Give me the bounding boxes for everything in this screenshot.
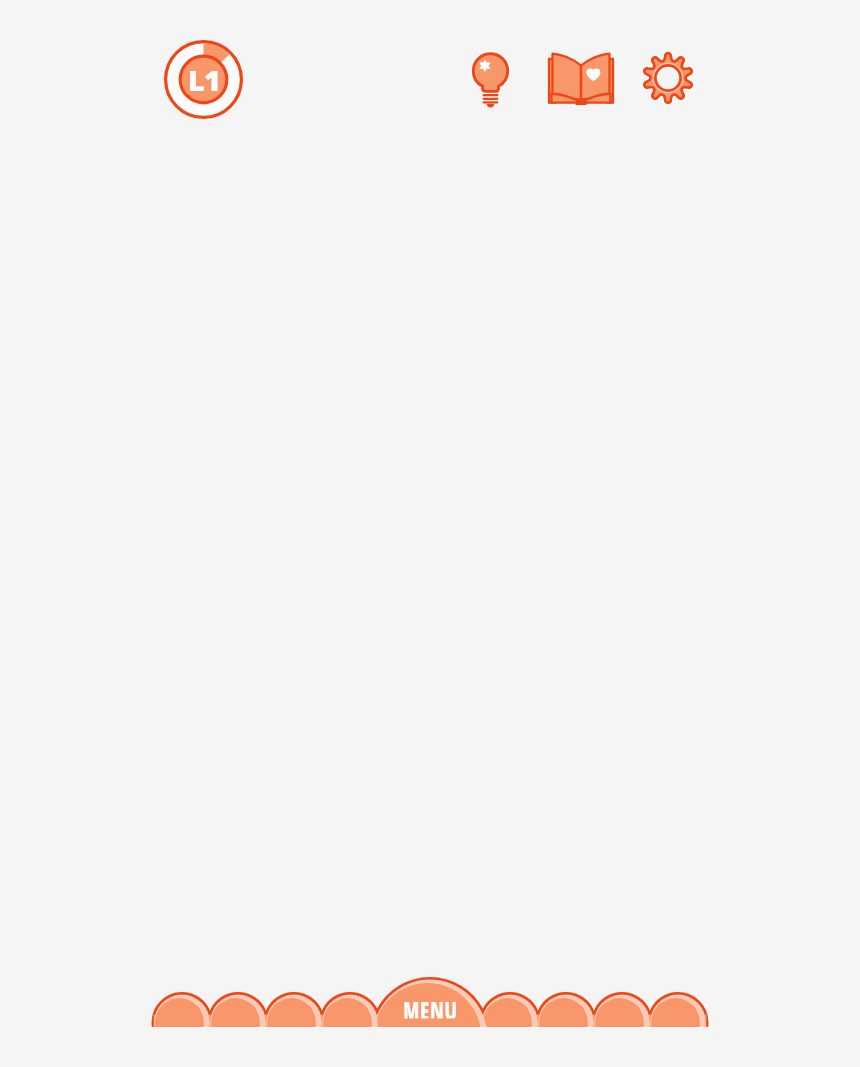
button[interactable]: MENU [151, 965, 709, 1027]
button[interactable]: Story book [543, 44, 619, 110]
staticText: L1 [188, 60, 220, 99]
button[interactable]: Settings [638, 48, 698, 108]
button[interactable]: Hints [468, 48, 513, 112]
button[interactable]: Level 1 progress [164, 40, 243, 119]
staticText: MENU [403, 992, 458, 1019]
